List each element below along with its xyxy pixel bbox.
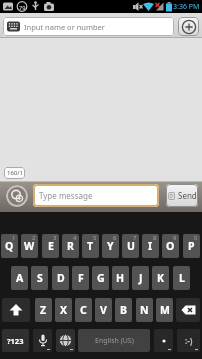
staticText: 0 — [194, 234, 198, 242]
staticText: English (US) — [95, 336, 134, 346]
staticText: Y — [107, 239, 114, 253]
staticText: 3:36 PM — [173, 2, 200, 12]
staticText: V — [100, 303, 107, 317]
button[interactable]: A — [11, 266, 28, 290]
button[interactable]: I — [142, 234, 159, 258]
button[interactable]: G — [92, 266, 109, 290]
staticText: 1 — [12, 234, 16, 242]
staticText: 5 — [93, 234, 97, 242]
button[interactable] — [2, 298, 30, 322]
staticText: N — [140, 303, 149, 317]
button[interactable]: U — [122, 234, 139, 258]
staticText: Input name or number — [24, 22, 105, 32]
staticText: G — [97, 271, 105, 285]
button[interactable]: H — [112, 266, 129, 290]
staticText: 7 — [133, 234, 137, 242]
staticText: R — [67, 239, 74, 253]
staticText: O — [166, 239, 175, 253]
button[interactable]: S — [31, 266, 48, 290]
button[interactable] — [176, 298, 200, 322]
staticText: 160/1 — [7, 169, 23, 177]
button[interactable]: B — [115, 298, 132, 322]
staticText: W — [24, 239, 35, 253]
staticText: E — [48, 239, 54, 253]
button[interactable]: Y — [102, 234, 119, 258]
staticText: 2 — [32, 234, 36, 242]
button[interactable]: J — [132, 266, 149, 290]
staticText: 9 — [173, 234, 177, 242]
staticText: K — [157, 271, 164, 285]
button[interactable] — [178, 17, 199, 36]
button[interactable]: X — [55, 298, 72, 322]
button[interactable]: English (US) — [78, 329, 150, 352]
staticText: 8 — [153, 234, 157, 242]
button[interactable]: R — [62, 234, 79, 258]
staticText: L — [179, 271, 185, 285]
staticText: 4 — [73, 234, 77, 242]
staticText: Type message — [39, 190, 93, 201]
staticText: :-) — [185, 335, 193, 346]
button[interactable]: L — [173, 266, 190, 290]
button[interactable]: Send — [166, 184, 198, 207]
staticText: 6 — [113, 234, 117, 242]
button[interactable]: Type message — [33, 184, 159, 207]
button[interactable]: K — [152, 266, 169, 290]
button[interactable]: E — [42, 234, 59, 258]
staticText: H — [116, 271, 125, 285]
button[interactable] — [6, 185, 28, 207]
button[interactable] — [56, 329, 75, 352]
button[interactable]: M — [156, 298, 173, 322]
button[interactable]: F — [72, 266, 89, 290]
staticText: X — [60, 303, 68, 317]
staticText: J — [139, 271, 143, 285]
button[interactable]: P — [183, 234, 200, 258]
button[interactable]: Z — [35, 298, 52, 322]
button[interactable]: T — [82, 234, 99, 258]
staticText: T — [87, 239, 94, 253]
button[interactable]: D — [52, 266, 69, 290]
button[interactable] — [0, 212, 202, 359]
button[interactable]: N — [136, 298, 153, 322]
staticText: ?123 — [7, 336, 24, 346]
staticText: 79 — [19, 4, 26, 11]
staticText: Send — [178, 190, 197, 201]
staticText: P — [188, 239, 195, 253]
button[interactable]: Input name or number — [3, 17, 174, 36]
staticText: Q — [5, 239, 14, 253]
button[interactable] — [154, 329, 173, 352]
staticText: A — [16, 271, 24, 285]
staticText: B — [120, 303, 127, 317]
staticText: D — [57, 271, 65, 285]
button[interactable]: W — [21, 234, 38, 258]
staticText: S — [37, 271, 43, 285]
button[interactable]: Q — [1, 234, 18, 258]
button[interactable]: V — [95, 298, 112, 322]
button[interactable]: C — [75, 298, 92, 322]
button[interactable]: O — [162, 234, 179, 258]
staticText: U — [127, 239, 135, 253]
staticText: M — [160, 303, 170, 317]
button[interactable]: ?123 — [2, 329, 29, 352]
staticText: C — [80, 303, 87, 317]
staticText: 3 — [53, 234, 57, 242]
staticText: F — [78, 271, 84, 285]
button[interactable] — [33, 329, 52, 352]
staticText: I — [148, 239, 153, 253]
button[interactable]: :-) — [177, 329, 200, 352]
staticText: Z — [40, 303, 47, 317]
